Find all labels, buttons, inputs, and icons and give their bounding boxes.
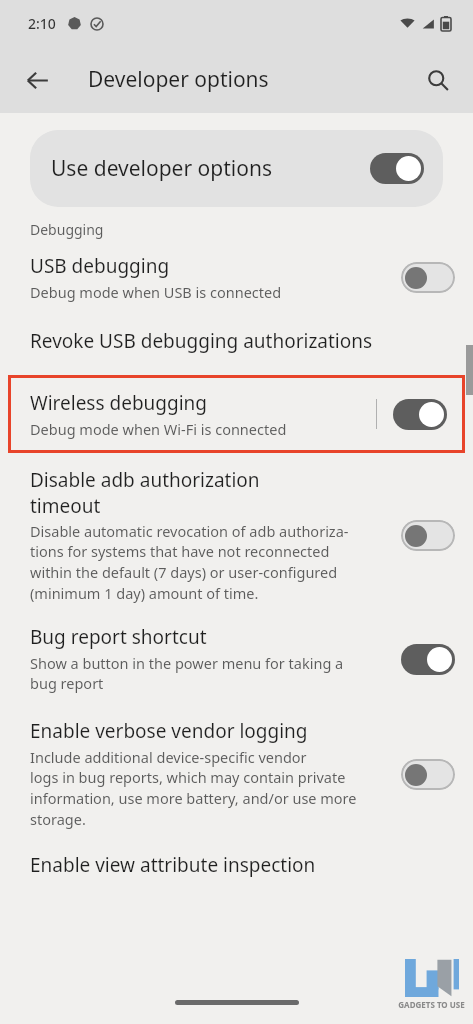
button[interactable]: Off [401,520,455,551]
staticText: 2:10 [28,14,56,33]
button[interactable]: Off [401,262,455,293]
staticText: Enable view attribute inspection [30,852,316,878]
button[interactable]: On [401,644,455,675]
staticText: Wireless debugging [30,390,208,416]
button[interactable]: Disable adb authorization timeout [0,467,473,604]
staticText: USB debugging [30,253,170,279]
button[interactable]: Search [415,57,461,103]
staticText: Debug mode when Wi-Fi is connected [30,419,287,439]
button[interactable]: USB debugging [0,253,473,302]
staticText: Include additional device-specific vendo… [30,747,357,830]
button[interactable]: Enable view attribute inspection [0,848,473,882]
button[interactable]: Use developer options [30,130,443,207]
button[interactable]: Wireless debugging [8,375,465,453]
staticText: Developer options [88,65,269,94]
button[interactable]: On [370,153,424,184]
staticText: Debug mode when USB is connected [30,282,282,302]
staticText: Bug report shortcut [30,624,207,650]
staticText: Show a button in the power menu for taki… [30,653,344,694]
button[interactable]: Revoke USB debugging authorizations [0,324,473,358]
staticText: GADGETS TO USE [398,999,465,1010]
staticText: Disable adb authorization timeout [30,467,260,518]
button[interactable]: Bug report shortcut [0,624,473,694]
button[interactable]: Off [401,759,455,790]
staticText: Revoke USB debugging authorizations [30,328,373,354]
button[interactable]: On [393,399,447,430]
staticText: Debugging [30,220,104,239]
staticText: Enable verbose vendor logging [30,718,308,744]
button[interactable]: Enable verbose vendor logging [0,718,473,830]
staticText: Disable automatic revocation of adb auth… [30,521,349,604]
button[interactable]: Back [14,57,60,103]
staticText: Use developer options [51,154,272,183]
